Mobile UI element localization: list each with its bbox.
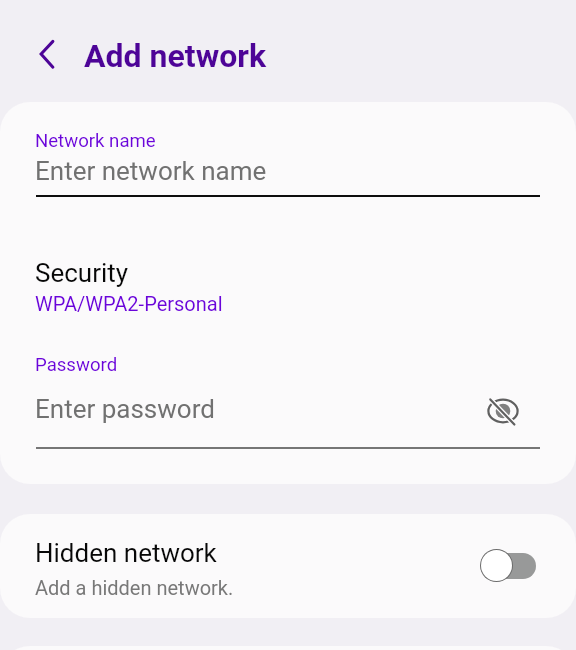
button[interactable]: Hidden network (0, 514, 576, 618)
staticText: Enter network name (35, 156, 267, 186)
staticText: Network name (35, 130, 156, 152)
staticText: Security (35, 258, 129, 288)
button[interactable]: Navigate up (23, 30, 71, 78)
button[interactable]: Security (0, 248, 576, 326)
button[interactable]: Hidden network switch, off (480, 549, 538, 583)
staticText: Enter password (35, 394, 215, 424)
staticText: Add network (84, 37, 267, 75)
staticText: Hidden network (35, 538, 217, 568)
staticText: WPA/WPA2-Personal (35, 292, 223, 315)
button[interactable]: Show password (483, 391, 523, 431)
staticText: Add a hidden network. (35, 576, 234, 599)
staticText: Password (35, 354, 118, 376)
